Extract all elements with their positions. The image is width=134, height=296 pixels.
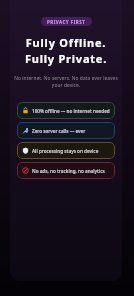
staticText: PRIVACY FIRST <box>47 19 86 25</box>
staticText: Zero server calls — ever <box>32 128 86 134</box>
staticText: No internet. No servers. No data ever le… <box>10 75 122 89</box>
button[interactable]: 100% offline — no internet needed <box>17 102 115 119</box>
button[interactable]: Zero server calls — ever <box>17 122 115 139</box>
staticText: All processing stays on device <box>32 148 99 154</box>
staticText: Fully Offline. Fully Private. <box>10 35 122 66</box>
staticText: No ads, no tracking, no analytics <box>32 168 105 174</box>
button[interactable]: PRIVACY FIRST <box>41 17 92 26</box>
staticText: 100% offline — no internet needed <box>32 108 110 114</box>
button[interactable]: All processing stays on device <box>17 142 115 159</box>
button[interactable]: No ads, no tracking, no analytics <box>17 162 115 179</box>
